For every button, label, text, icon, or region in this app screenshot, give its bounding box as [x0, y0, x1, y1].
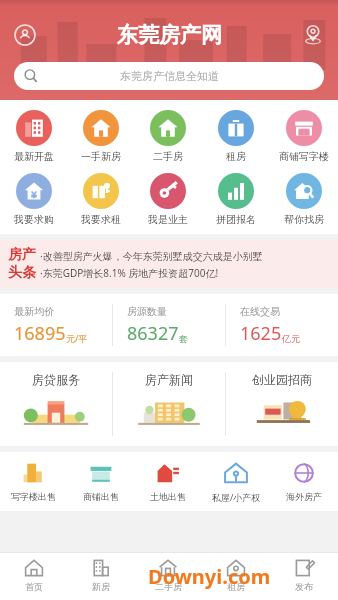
button[interactable]: 拼团报名 — [202, 171, 270, 228]
button[interactable]: 租房 — [202, 552, 270, 600]
button[interactable]: 商铺出售 — [67, 460, 134, 502]
staticText: 1625 — [240, 321, 282, 346]
staticText: 拼团报名 — [216, 213, 256, 226]
button[interactable]: Account — [12, 22, 38, 48]
staticText: 我要求租 — [81, 213, 121, 226]
button[interactable]: 发布 — [270, 552, 338, 600]
button[interactable]: 创业园招商 — [226, 362, 338, 446]
button[interactable]: 商铺写字楼 — [270, 108, 338, 165]
button[interactable]: 土地出售 — [134, 460, 202, 502]
staticText: 创业园招商 — [252, 372, 312, 387]
button[interactable]: Location — [300, 22, 326, 48]
button[interactable]: 东莞房产信息全知道 — [14, 62, 324, 90]
staticText: 二手房 — [153, 150, 183, 163]
staticText: 房产新闻 — [145, 372, 193, 387]
staticText: 最新开盘 — [14, 150, 54, 163]
staticText: 帮你找房 — [284, 213, 324, 226]
button[interactable]: 房贷服务 — [0, 362, 112, 446]
staticText: 商铺写字楼 — [279, 150, 329, 163]
staticText: 86327 — [127, 321, 179, 346]
staticText: 房源数量 — [127, 305, 167, 318]
staticText: 写字楼出售 — [11, 491, 56, 502]
staticText: 发布 — [295, 581, 313, 592]
staticText: 新房 — [92, 581, 110, 592]
button[interactable]: 二手房 — [134, 108, 202, 165]
button[interactable]: 房产新闻 — [113, 362, 225, 446]
button[interactable]: 私屋/小产权 — [202, 460, 270, 503]
staticText: 首页 — [25, 581, 43, 592]
staticText: 房产 — [8, 246, 36, 264]
button[interactable]: 我是业主 — [134, 171, 202, 228]
button[interactable]: 房源数量 — [113, 294, 225, 356]
button[interactable]: 最新开盘 — [0, 108, 67, 165]
button[interactable]: 我要求购 — [0, 171, 67, 228]
staticText: 海外房产 — [286, 491, 322, 502]
staticText: 东莞房产网 — [117, 22, 222, 48]
staticText: 我是业主 — [148, 213, 188, 226]
staticText: 私屋/小产权 — [212, 491, 261, 503]
staticText: 最新均价 — [14, 305, 54, 318]
staticText: 我要求购 — [14, 213, 54, 226]
button[interactable]: 一手新房 — [67, 108, 134, 165]
staticText: 租房 — [226, 150, 246, 163]
staticText: ·改善型房产火爆，今年东莞别墅成交六成是小别墅 — [40, 249, 263, 263]
staticText: 16895 — [14, 321, 66, 346]
button[interactable]: 租房 — [202, 108, 270, 165]
button[interactable]: 最新均价 — [0, 294, 112, 356]
staticText: 房贷服务 — [32, 372, 80, 387]
button[interactable]: 二手房 — [134, 552, 202, 600]
button[interactable]: 首页 — [0, 552, 67, 600]
staticText: 商铺出售 — [83, 491, 119, 502]
staticText: Downyi.com — [148, 563, 271, 590]
button[interactable]: 在线交易 — [226, 294, 338, 356]
staticText: 租房 — [227, 581, 245, 592]
staticText: 亿元 — [282, 333, 300, 344]
button[interactable]: 我要求租 — [67, 171, 134, 228]
staticText: 二手房 — [155, 581, 182, 592]
button[interactable]: 海外房产 — [270, 460, 338, 502]
staticText: 在线交易 — [240, 305, 280, 318]
staticText: 头条 — [8, 264, 36, 282]
staticText: 一手新房 — [81, 150, 121, 163]
button[interactable]: 新房 — [67, 552, 134, 600]
button[interactable]: 房产 — [8, 246, 330, 282]
staticText: 元/平 — [66, 332, 88, 344]
button[interactable]: 帮你找房 — [270, 171, 338, 228]
staticText: ·东莞GDP增长8.1% 房地产投资超700亿! — [40, 266, 219, 280]
staticText: 套 — [179, 333, 188, 344]
staticText: 东莞房产信息全知道 — [120, 69, 219, 83]
button[interactable]: 写字楼出售 — [0, 460, 67, 502]
staticText: 土地出售 — [150, 491, 186, 502]
